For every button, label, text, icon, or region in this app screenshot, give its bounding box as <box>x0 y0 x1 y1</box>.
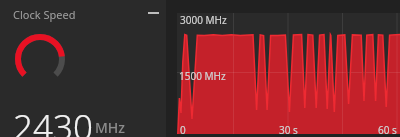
staticText: 0 <box>180 123 186 137</box>
staticText: 3000 MHz <box>180 13 227 27</box>
button[interactable]: Clock Speed <box>0 0 166 137</box>
staticText: 60 s <box>378 123 397 137</box>
staticText: 1500 MHz <box>179 69 226 83</box>
staticText: 2430 <box>13 103 93 137</box>
staticText: MHz <box>95 118 126 137</box>
staticText: Clock Speed <box>13 7 76 22</box>
staticText: 30 s <box>279 123 298 137</box>
button[interactable]: 3000 MHz <box>177 0 400 137</box>
button[interactable]: Minimise <box>141 5 165 21</box>
